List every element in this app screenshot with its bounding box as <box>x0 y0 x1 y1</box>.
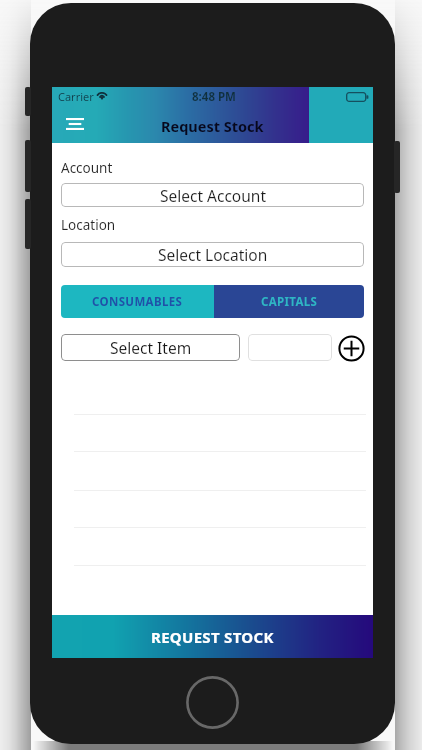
button[interactable]: Add item <box>338 335 365 362</box>
button[interactable]: CAPITALS <box>214 285 364 318</box>
staticText: Carrier <box>58 89 94 104</box>
button[interactable]: Select Account <box>61 183 364 207</box>
staticText: REQUEST STOCK <box>151 627 274 647</box>
staticText: Select Account <box>160 185 266 206</box>
staticText: 8:48 PM <box>192 89 236 105</box>
staticText: Request Stock <box>161 116 264 136</box>
button[interactable] <box>248 334 332 361</box>
staticText: Location <box>61 216 116 234</box>
button[interactable]: Select Location <box>61 242 364 267</box>
staticText: Account <box>61 159 113 177</box>
staticText: Select Item <box>110 337 192 358</box>
staticText: Select Location <box>158 244 268 265</box>
staticText: CONSUMABLES <box>92 294 183 310</box>
button[interactable]: Select Item <box>61 334 240 361</box>
staticText: CAPITALS <box>261 294 318 310</box>
button[interactable]: CONSUMABLES <box>61 285 214 318</box>
button[interactable]: Open navigation menu <box>60 112 90 136</box>
button[interactable]: REQUEST STOCK <box>52 615 373 658</box>
